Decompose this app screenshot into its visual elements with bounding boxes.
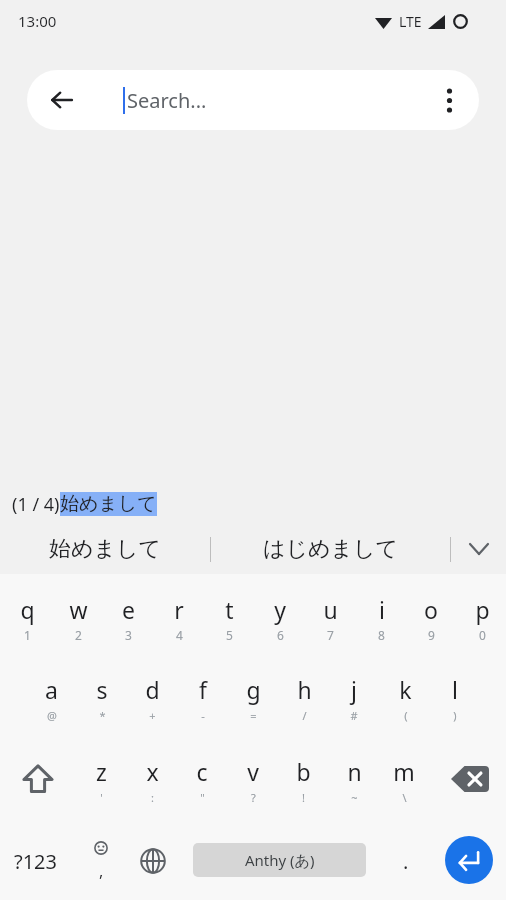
button[interactable]: Backspace [440, 748, 500, 810]
staticText: Anthy (あ) [245, 850, 315, 870]
button[interactable]: o [406, 580, 456, 660]
staticText: * [99, 708, 106, 723]
staticText: e [122, 594, 135, 625]
button[interactable]: Emoji [76, 832, 126, 890]
button[interactable]: m [379, 748, 429, 814]
staticText: 2 [75, 627, 82, 643]
button[interactable]: More options [431, 82, 467, 118]
button[interactable]: q [2, 580, 52, 660]
staticText: " [200, 790, 205, 805]
button[interactable]: Enter [445, 836, 493, 884]
staticText: m [393, 756, 415, 787]
button[interactable]: Anthy (あ) [193, 843, 366, 877]
staticText: 8 [378, 627, 385, 643]
staticText: / [302, 708, 307, 723]
button[interactable]: g [228, 662, 278, 742]
staticText: はじめまして [263, 535, 399, 563]
button[interactable]: r [154, 580, 204, 660]
staticText: LTE [399, 12, 422, 31]
staticText: . [403, 848, 409, 875]
staticText: (1 / 4) [12, 492, 60, 517]
button[interactable]: s [77, 662, 127, 742]
button[interactable]: w [53, 580, 103, 660]
staticText: @ [47, 708, 57, 723]
button[interactable]: はじめまして [211, 524, 450, 574]
staticText: ( [404, 708, 408, 723]
button[interactable]: 始めまして [0, 524, 210, 574]
button[interactable]: Shift [8, 748, 68, 810]
staticText: 1 [24, 627, 31, 643]
staticText: x [146, 756, 159, 787]
button[interactable]: Expand suggestions [451, 524, 506, 574]
staticText: g [246, 674, 261, 705]
button[interactable]: Back [44, 82, 80, 118]
button[interactable]: y [255, 580, 305, 660]
staticText: , [99, 860, 104, 882]
staticText: \ [402, 790, 407, 805]
staticText: - [201, 708, 205, 723]
button[interactable]: f [178, 662, 228, 742]
button[interactable]: a [26, 662, 76, 742]
button[interactable]: h [279, 662, 329, 742]
staticText: o [424, 594, 438, 625]
staticText: 5 [226, 627, 233, 643]
button[interactable]: l [430, 662, 480, 742]
staticText: 4 [176, 627, 183, 643]
staticText: w [69, 594, 88, 625]
button[interactable]: t [204, 580, 254, 660]
staticText: ' [100, 790, 103, 805]
button[interactable]: c [177, 748, 227, 814]
staticText: = [250, 708, 257, 723]
staticText: s [96, 674, 108, 705]
button[interactable]: ?123 [2, 832, 68, 890]
staticText: n [347, 756, 362, 787]
staticText: q [20, 594, 35, 625]
staticText: 始めまして [60, 492, 157, 516]
button[interactable]: z [76, 748, 126, 814]
staticText: 始めまして [49, 535, 162, 563]
button[interactable]: e [103, 580, 153, 660]
button[interactable]: . [382, 832, 430, 890]
staticText: ~ [351, 790, 358, 805]
staticText: ! [302, 790, 305, 805]
button[interactable]: k [380, 662, 430, 742]
staticText: # [350, 708, 358, 723]
staticText: l [452, 674, 458, 705]
staticText: ?123 [14, 848, 57, 875]
staticText: v [247, 756, 259, 787]
button[interactable]: p [457, 580, 506, 660]
staticText: + [149, 708, 156, 723]
staticText: i [379, 594, 385, 625]
button[interactable]: i [356, 580, 406, 660]
button[interactable]: Back [27, 70, 479, 130]
staticText: j [351, 674, 357, 705]
staticText: f [199, 674, 207, 705]
staticText: Search... [127, 87, 207, 114]
button[interactable]: v [228, 748, 278, 814]
staticText: 9 [428, 627, 435, 643]
staticText: t [225, 594, 234, 625]
button[interactable]: Change keyboard language [128, 832, 178, 890]
staticText: u [323, 594, 338, 625]
staticText: h [297, 674, 312, 705]
staticText: b [296, 756, 311, 787]
staticText: p [475, 594, 490, 625]
staticText: 13:00 [18, 11, 57, 31]
staticText: z [96, 756, 107, 787]
button[interactable]: n [329, 748, 379, 814]
staticText: 3 [125, 627, 132, 643]
staticText: r [174, 594, 184, 625]
staticText: 6 [277, 627, 284, 643]
button[interactable]: x [127, 748, 177, 814]
staticText: d [145, 674, 160, 705]
staticText: c [196, 756, 208, 787]
staticText: k [399, 674, 412, 705]
button[interactable]: j [329, 662, 379, 742]
staticText: ) [453, 708, 457, 723]
button[interactable]: u [305, 580, 355, 660]
staticText: y [274, 594, 286, 625]
button[interactable]: d [127, 662, 177, 742]
staticText: 7 [327, 627, 334, 643]
staticText: : [151, 790, 154, 805]
button[interactable]: b [278, 748, 328, 814]
